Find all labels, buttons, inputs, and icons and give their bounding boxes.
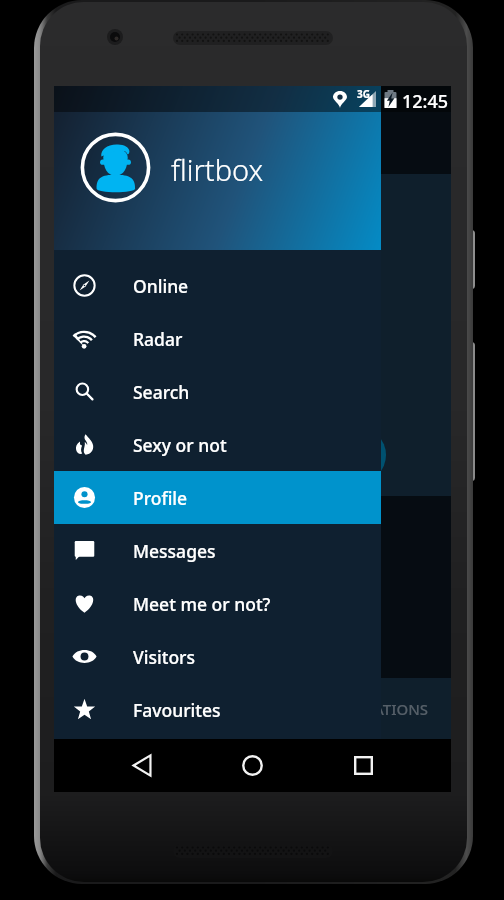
staticText: Sexy or not [133,433,227,457]
button[interactable]: Back [115,739,169,792]
staticText: 12:45 [402,89,449,114]
button[interactable]: Messages [54,524,381,577]
button[interactable]: Compose message [330,427,386,483]
button[interactable]: Meet me or not? [54,577,381,630]
button[interactable]: Search [54,365,381,418]
staticText: CONVERSATIONS [306,699,429,719]
button[interactable]: Sexy or not [54,418,381,471]
staticText: Meet me or not? [133,592,271,616]
button[interactable]: Visitors [54,630,381,683]
staticText: flirtbox [171,150,264,189]
staticText: Favourites [133,698,221,722]
button[interactable]: Online [54,259,381,312]
staticText: Profile [133,486,188,510]
staticText: Messages [133,539,216,563]
button[interactable]: Recent apps [336,739,390,792]
staticText: 3G [357,87,370,101]
staticText: Online [133,274,189,298]
button[interactable]: Favourites [54,683,381,736]
button[interactable]: Profile [54,471,381,524]
button[interactable]: Home [225,739,279,792]
staticText: Search [133,380,190,404]
button[interactable]: Radar [54,312,381,365]
staticText: Visitors [133,645,196,669]
staticText: Radar [133,327,183,351]
